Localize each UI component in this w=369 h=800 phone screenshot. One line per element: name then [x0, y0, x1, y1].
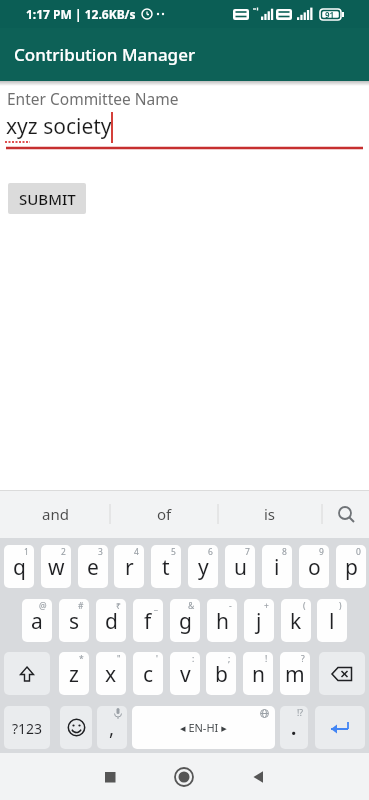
staticText: ₹ [116, 600, 121, 612]
button[interactable]: " [96, 652, 126, 695]
staticText: xyz society [6, 112, 112, 141]
button[interactable]: ₹ [96, 599, 126, 642]
staticText: d [105, 607, 118, 636]
staticText: v [180, 660, 191, 689]
staticText: 5 [171, 546, 176, 558]
staticText: i [274, 553, 280, 582]
button[interactable]: ? [280, 652, 310, 695]
staticText: 6 [208, 546, 213, 558]
staticText: Contribution Manager [14, 43, 196, 66]
staticText: ; [228, 653, 231, 665]
button[interactable] [245, 764, 271, 790]
button[interactable]: !? [280, 706, 308, 749]
button[interactable]: , [97, 706, 127, 749]
button[interactable]: _ [133, 599, 163, 642]
button[interactable]: + [244, 599, 274, 642]
staticText: _ [154, 600, 158, 612]
staticText: @ [39, 600, 47, 612]
button[interactable]: 3 [78, 545, 108, 588]
button[interactable]: 5 [151, 545, 181, 588]
staticText: ?123 [12, 719, 43, 738]
button[interactable]: ) [317, 599, 347, 642]
staticText: 2 [61, 546, 66, 558]
button[interactable]: : [170, 652, 200, 695]
button[interactable]: @ [22, 599, 52, 642]
staticText: 4 [134, 546, 139, 558]
button[interactable]: and [0, 490, 110, 538]
staticText: : [192, 653, 195, 665]
staticText: p [345, 553, 358, 582]
button[interactable]: 1 [4, 545, 34, 588]
staticText: w [48, 553, 65, 582]
button[interactable]: ( [281, 599, 311, 642]
button[interactable] [97, 764, 123, 790]
staticText: SUBMIT [19, 189, 76, 209]
button[interactable]: of [110, 490, 218, 538]
staticText: & [188, 600, 195, 612]
button[interactable]: 8 [262, 545, 292, 588]
staticText: Enter Committee Name [7, 88, 179, 109]
staticText: is [264, 504, 276, 524]
staticText: ( [303, 600, 306, 612]
staticText: 91 [325, 9, 335, 20]
staticText: 1:17 PM | 12.6KB/s [26, 6, 136, 22]
staticText: 0 [356, 546, 361, 558]
staticText: 1 [24, 546, 29, 558]
staticText: h [216, 607, 229, 636]
staticText: ? [301, 653, 305, 665]
button[interactable] [322, 490, 369, 538]
staticText: x [105, 660, 117, 689]
staticText: a [31, 607, 43, 636]
staticText: ! [265, 653, 268, 665]
button[interactable]: * [59, 652, 89, 695]
staticText: ' [156, 653, 158, 665]
staticText: 9 [319, 546, 324, 558]
staticText: , [109, 715, 115, 741]
staticText: ◂ EN-HI ▸ [180, 720, 227, 735]
staticText: y [198, 553, 209, 582]
staticText: j [256, 607, 262, 636]
button[interactable]: - [207, 599, 237, 642]
staticText: and [42, 504, 69, 524]
button[interactable]: xyz society [0, 106, 369, 152]
staticText: 8 [282, 546, 287, 558]
button[interactable]: ' [133, 652, 163, 695]
button[interactable]: is [218, 490, 322, 538]
staticText: t [162, 553, 170, 582]
staticText: m [285, 660, 305, 689]
button[interactable]: ?123 [4, 706, 50, 749]
button[interactable] [171, 764, 197, 790]
staticText: of [157, 504, 172, 524]
button[interactable]: # [59, 599, 89, 642]
staticText: . [291, 715, 297, 741]
staticText: g [179, 607, 192, 636]
staticText: o [308, 553, 321, 582]
staticText: ) [339, 600, 342, 612]
staticText: - [229, 600, 232, 612]
button[interactable]: 6 [188, 545, 218, 588]
staticText: n [252, 660, 265, 689]
staticText: # [78, 600, 84, 612]
button[interactable] [4, 652, 50, 695]
staticText: r [125, 553, 134, 582]
button[interactable]: SUBMIT [8, 183, 86, 214]
staticText: c [143, 660, 154, 689]
button[interactable] [60, 706, 92, 749]
button[interactable]: ; [206, 652, 236, 695]
staticText: + [264, 600, 269, 612]
button[interactable]: 4 [114, 545, 144, 588]
button[interactable]: ◂ EN-HI ▸ [132, 706, 275, 749]
button[interactable]: 7 [225, 545, 255, 588]
staticText: b [215, 660, 228, 689]
button[interactable]: 2 [41, 545, 71, 588]
staticText: s [69, 607, 80, 636]
button[interactable]: 9 [299, 545, 329, 588]
button[interactable]: ! [243, 652, 273, 695]
button[interactable] [319, 652, 365, 695]
staticText: l [329, 607, 335, 636]
staticText: " [117, 653, 121, 665]
button[interactable]: 0 [336, 545, 366, 588]
button[interactable]: & [170, 599, 200, 642]
button[interactable] [315, 706, 365, 749]
staticText: !? [297, 707, 303, 719]
